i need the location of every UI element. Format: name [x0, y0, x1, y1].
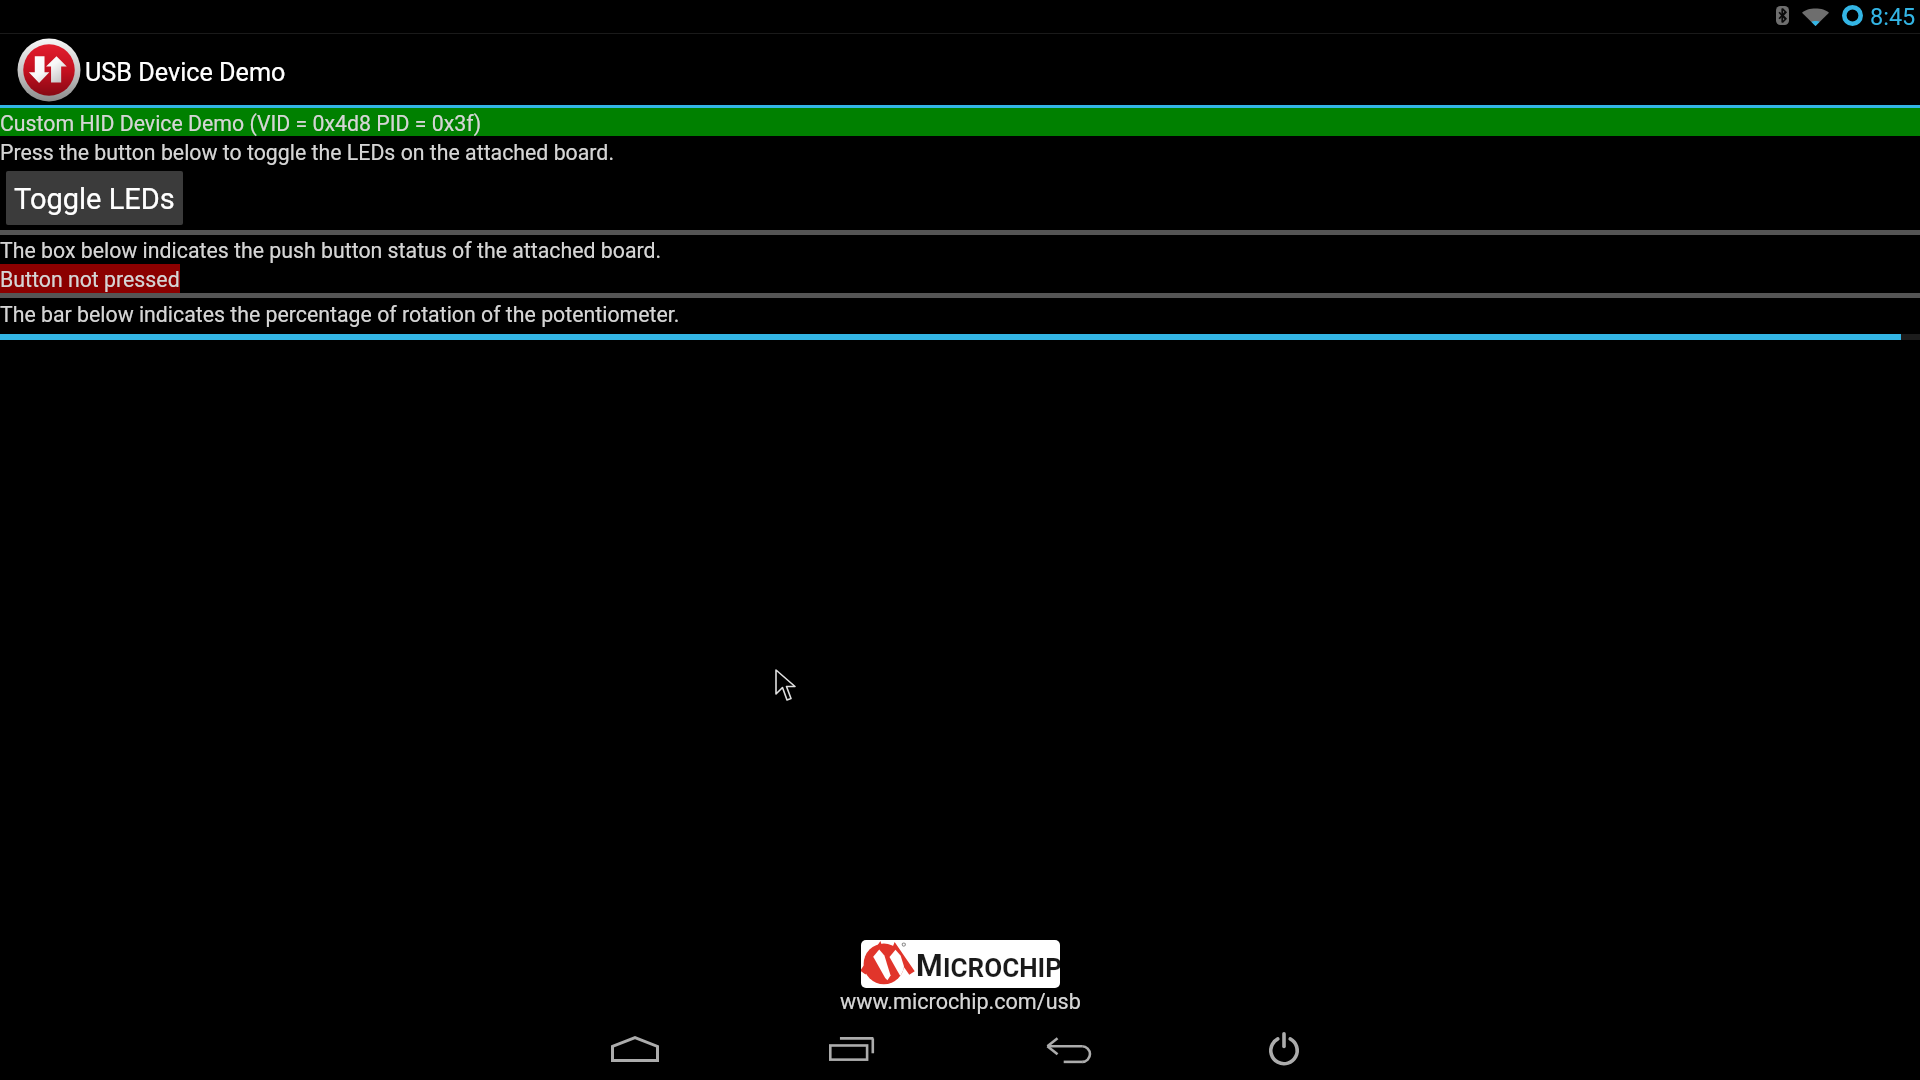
staticText: USB Device Demo — [85, 58, 286, 88]
button[interactable]: Power — [1248, 1020, 1320, 1076]
button[interactable]: Recent apps — [816, 1020, 888, 1076]
staticText: 8:45 — [1870, 3, 1916, 31]
staticText: The bar below indicates the percentage o… — [0, 302, 680, 327]
staticText: www.microchip.com/usb — [840, 989, 1081, 1014]
button[interactable]: Toggle LEDs — [6, 171, 183, 225]
staticText: Press the button below to toggle the LED… — [0, 140, 614, 165]
button[interactable]: Back — [1031, 1022, 1103, 1078]
staticText: Button not pressed — [0, 267, 180, 292]
button[interactable]: Home — [599, 1021, 671, 1077]
staticText: ICROCHIP — [943, 953, 1060, 983]
staticText: Toggle LEDs — [14, 182, 175, 216]
staticText: M — [916, 948, 943, 984]
staticText: Custom HID Device Demo (VID = 0x4d8 PID … — [0, 111, 482, 136]
staticText: The box below indicates the push button … — [0, 238, 662, 263]
